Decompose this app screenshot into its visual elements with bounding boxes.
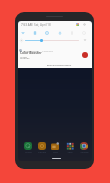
button[interactable]: BLOCK NOTIFICATIONS	[45, 63, 74, 68]
button[interactable]: Flashlight	[68, 29, 75, 36]
staticText: Active	[20, 55, 28, 58]
button[interactable]: Bluetooth	[31, 29, 38, 36]
button[interactable]: Settings	[20, 56, 30, 59]
staticText: 12:00 PM	[42, 49, 53, 52]
button[interactable]: Apps	[64, 142, 76, 154]
button[interactable]: Do not disturb	[43, 29, 50, 36]
staticText: Sat, April 18	[34, 23, 51, 27]
staticText: BLOCK NOTIFICATIONS	[47, 64, 72, 67]
staticText: Phone	[25, 151, 32, 154]
staticText: Chrome	[80, 151, 89, 154]
button[interactable]: Phone	[22, 142, 34, 154]
staticText: Files	[53, 151, 58, 154]
staticText: Color Booster	[23, 49, 40, 52]
staticText: Apps	[67, 151, 73, 154]
button[interactable]: Camera	[36, 142, 48, 154]
staticText: Color Booster	[20, 51, 42, 55]
button[interactable]: Chrome	[78, 142, 90, 154]
staticText: 7:53 AM	[21, 23, 33, 27]
button[interactable]: Airplane mode	[56, 29, 63, 36]
button[interactable]: Expand quick settings	[83, 38, 87, 42]
button[interactable]: Auto rotate	[80, 29, 87, 36]
button[interactable]: Files	[49, 142, 61, 154]
button[interactable]: Wi-Fi	[19, 29, 26, 36]
staticText: Camera	[38, 151, 46, 154]
